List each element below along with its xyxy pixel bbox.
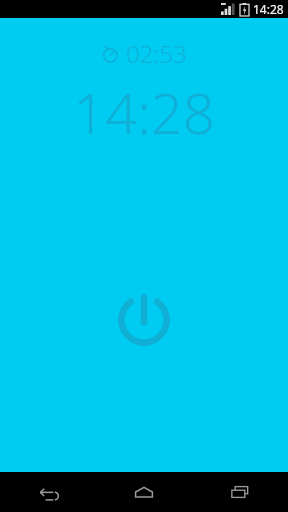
button[interactable]: Recent apps [192, 472, 288, 512]
button[interactable]: Power toggle [106, 282, 182, 358]
staticText: 14:28 [253, 1, 284, 17]
button[interactable]: Back [0, 472, 96, 512]
staticText: 02:53 [126, 37, 187, 70]
button[interactable]: Timer [101, 37, 187, 70]
button[interactable]: Home [96, 472, 192, 512]
staticText: 14:28 [73, 74, 215, 150]
other: Timer [101, 45, 119, 63]
